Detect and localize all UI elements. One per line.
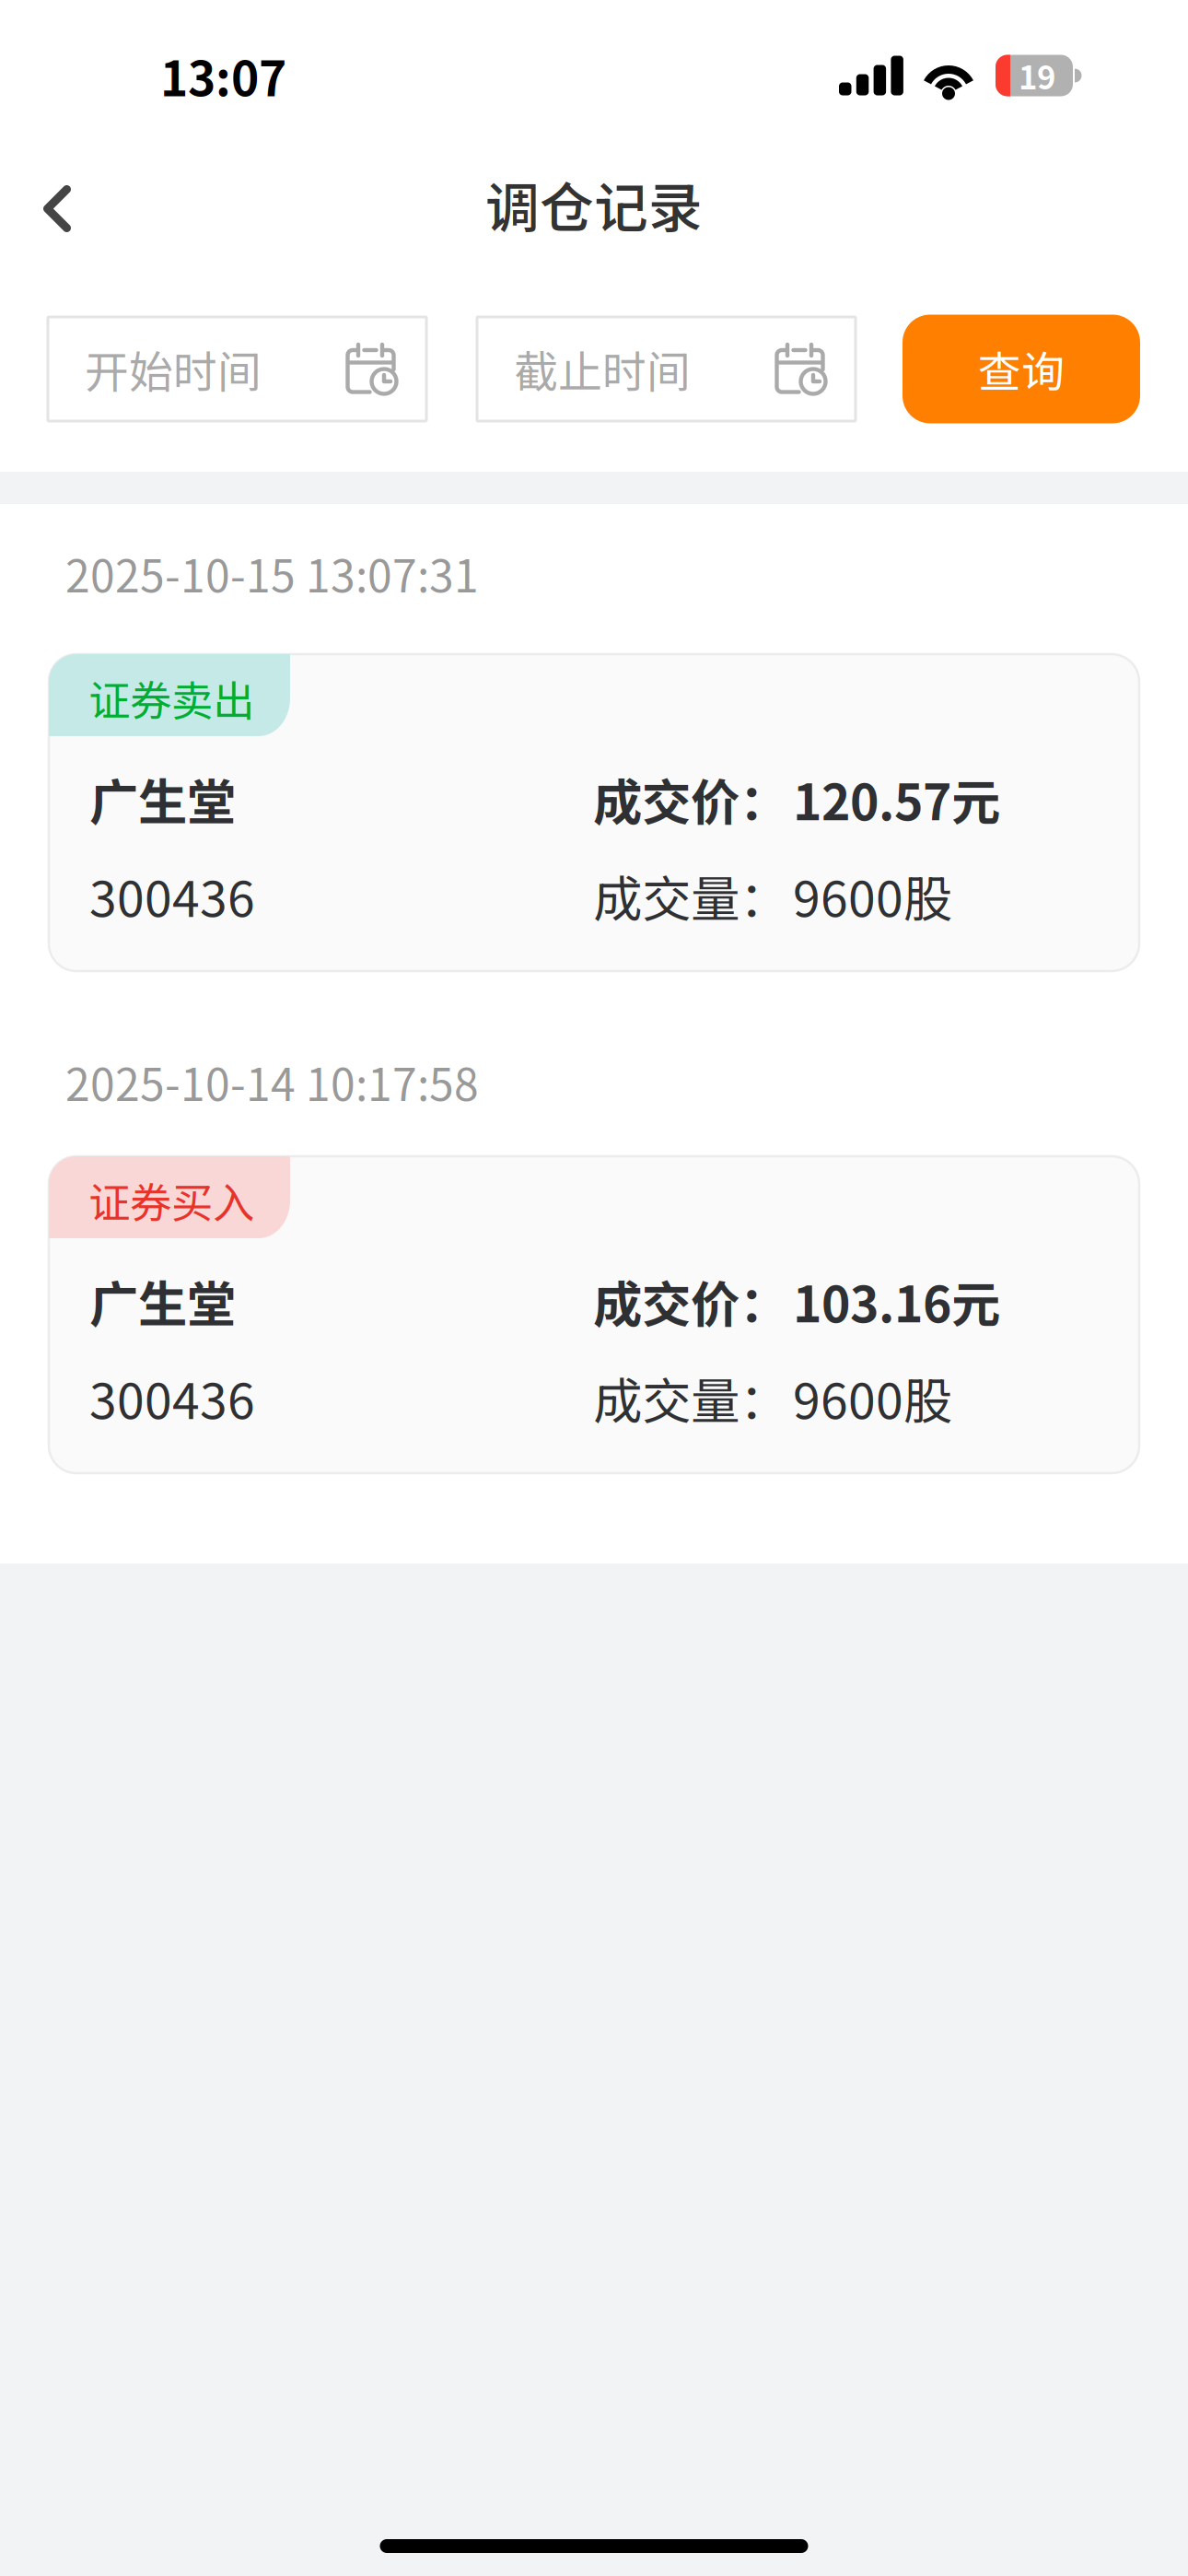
- staticText: 2025-10-15 13:07:31: [65, 541, 479, 605]
- staticText: 调仓记录: [485, 165, 703, 243]
- button[interactable]: 返回: [0, 157, 114, 260]
- button[interactable]: 广生堂: [49, 654, 1139, 971]
- staticText: 9600股: [793, 1362, 952, 1433]
- staticText: 成交量：: [593, 1362, 788, 1433]
- staticText: 截止时间: [514, 337, 691, 401]
- staticText: 成交价：: [593, 1265, 788, 1336]
- staticText: 9600股: [793, 860, 952, 931]
- staticText: 成交价：: [593, 763, 788, 834]
- staticText: 查询: [978, 338, 1065, 400]
- staticText: 300436: [89, 1362, 255, 1433]
- staticText: 证券卖出: [88, 668, 254, 728]
- button[interactable]: 查询: [903, 315, 1140, 423]
- button[interactable]: 截止时间: [477, 317, 856, 421]
- button[interactable]: 开始时间: [48, 317, 426, 421]
- staticText: 120.57元: [793, 763, 1000, 834]
- staticText: 广生堂: [89, 1265, 236, 1336]
- staticText: 开始时间: [85, 337, 262, 401]
- staticText: 成交量：: [593, 860, 788, 931]
- staticText: 广生堂: [89, 763, 236, 834]
- staticText: 19: [1019, 52, 1055, 99]
- staticText: 13:07: [160, 41, 286, 110]
- staticText: 2025-10-14 10:17:58: [65, 1050, 479, 1114]
- staticText: 103.16元: [793, 1265, 1000, 1336]
- button[interactable]: 广生堂: [49, 1156, 1139, 1473]
- staticText: 证券买入: [88, 1170, 254, 1230]
- staticText: 300436: [89, 860, 255, 931]
